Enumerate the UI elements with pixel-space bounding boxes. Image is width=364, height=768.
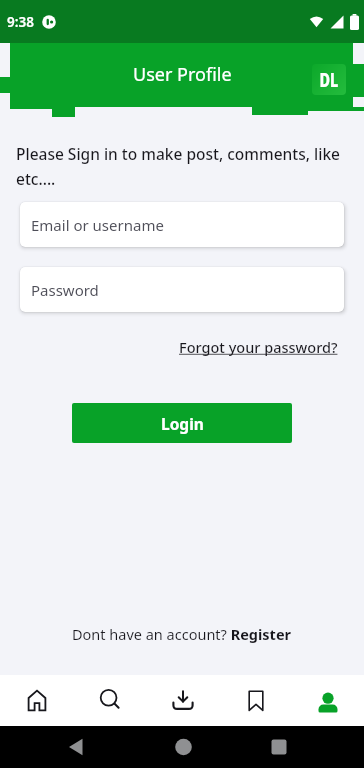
button[interactable]: DL: [312, 64, 346, 95]
button[interactable]: Login: [72, 403, 292, 443]
button[interactable]: Password: [20, 267, 344, 312]
staticText: Login: [161, 413, 204, 434]
staticText: DL: [319, 65, 339, 93]
button[interactable]: Forgot your password?: [179, 337, 338, 357]
button[interactable]: Dont have an account? Register: [72, 624, 292, 644]
staticText: User Profile: [133, 62, 232, 87]
button[interactable]: Email or username: [20, 202, 344, 247]
staticText: Password: [31, 280, 99, 300]
button[interactable]: [0, 675, 73, 726]
button[interactable]: [292, 675, 364, 726]
staticText: Please Sign in to make post, comments, l…: [16, 143, 340, 190]
button[interactable]: [219, 675, 292, 726]
button[interactable]: [73, 675, 146, 726]
button[interactable]: [146, 675, 219, 726]
staticText: Email or username: [31, 215, 164, 235]
staticText: 9:38: [7, 13, 34, 31]
